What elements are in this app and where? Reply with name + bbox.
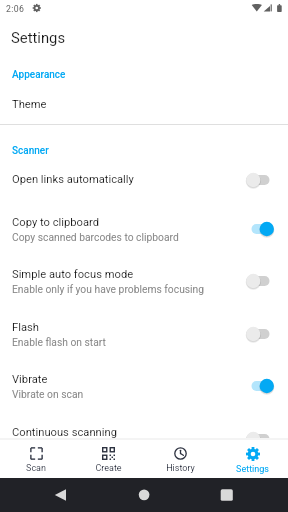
button[interactable]: Settings [216, 440, 288, 479]
staticText: 2:06 [6, 4, 25, 14]
button[interactable]: History [144, 440, 216, 479]
button[interactable]: Vibrate [0, 359, 288, 412]
button[interactable]: Toggle [246, 169, 274, 191]
button[interactable]: Simple auto focus mode [0, 254, 288, 307]
button[interactable]: Continuous scanning [0, 412, 288, 465]
staticText: Simple auto focus mode [12, 268, 134, 281]
button[interactable]: Copy to clipboard [0, 202, 288, 255]
staticText: Vibrate on scan [12, 388, 84, 400]
staticText: Appearance [12, 69, 66, 81]
button[interactable]: Toggle [246, 270, 274, 292]
button[interactable]: Open links automatically [0, 158, 288, 201]
staticText: Copy to clipboard [12, 216, 99, 229]
button[interactable]: Flash [0, 307, 288, 360]
staticText: Copy scanned barcodes to clipboard [12, 231, 179, 243]
staticText: Open links automatically [12, 173, 134, 186]
button[interactable]: Toggle [246, 428, 274, 450]
staticText: Theme [12, 98, 47, 111]
staticText: Settings [11, 29, 66, 46]
staticText: Enable only if you have problems focusin… [12, 283, 205, 295]
staticText: Flash [12, 321, 39, 334]
staticText: Scan [26, 463, 46, 474]
button[interactable]: Scan [0, 440, 72, 479]
button[interactable]: Toggle [246, 218, 274, 240]
staticText: Scanner [12, 145, 49, 157]
staticText: Keep scanning after result [12, 441, 132, 453]
staticText: Settings [236, 464, 269, 475]
staticText: Enable flash on start [12, 336, 106, 348]
button[interactable] [0, 86, 288, 124]
staticText: Continuous scanning [12, 426, 117, 439]
staticText: History [166, 463, 195, 474]
button[interactable]: Toggle [246, 375, 274, 397]
button[interactable]: Toggle [246, 323, 274, 345]
staticText: Vibrate [12, 373, 48, 386]
staticText: Create [95, 463, 122, 474]
button[interactable]: Create [72, 440, 144, 479]
